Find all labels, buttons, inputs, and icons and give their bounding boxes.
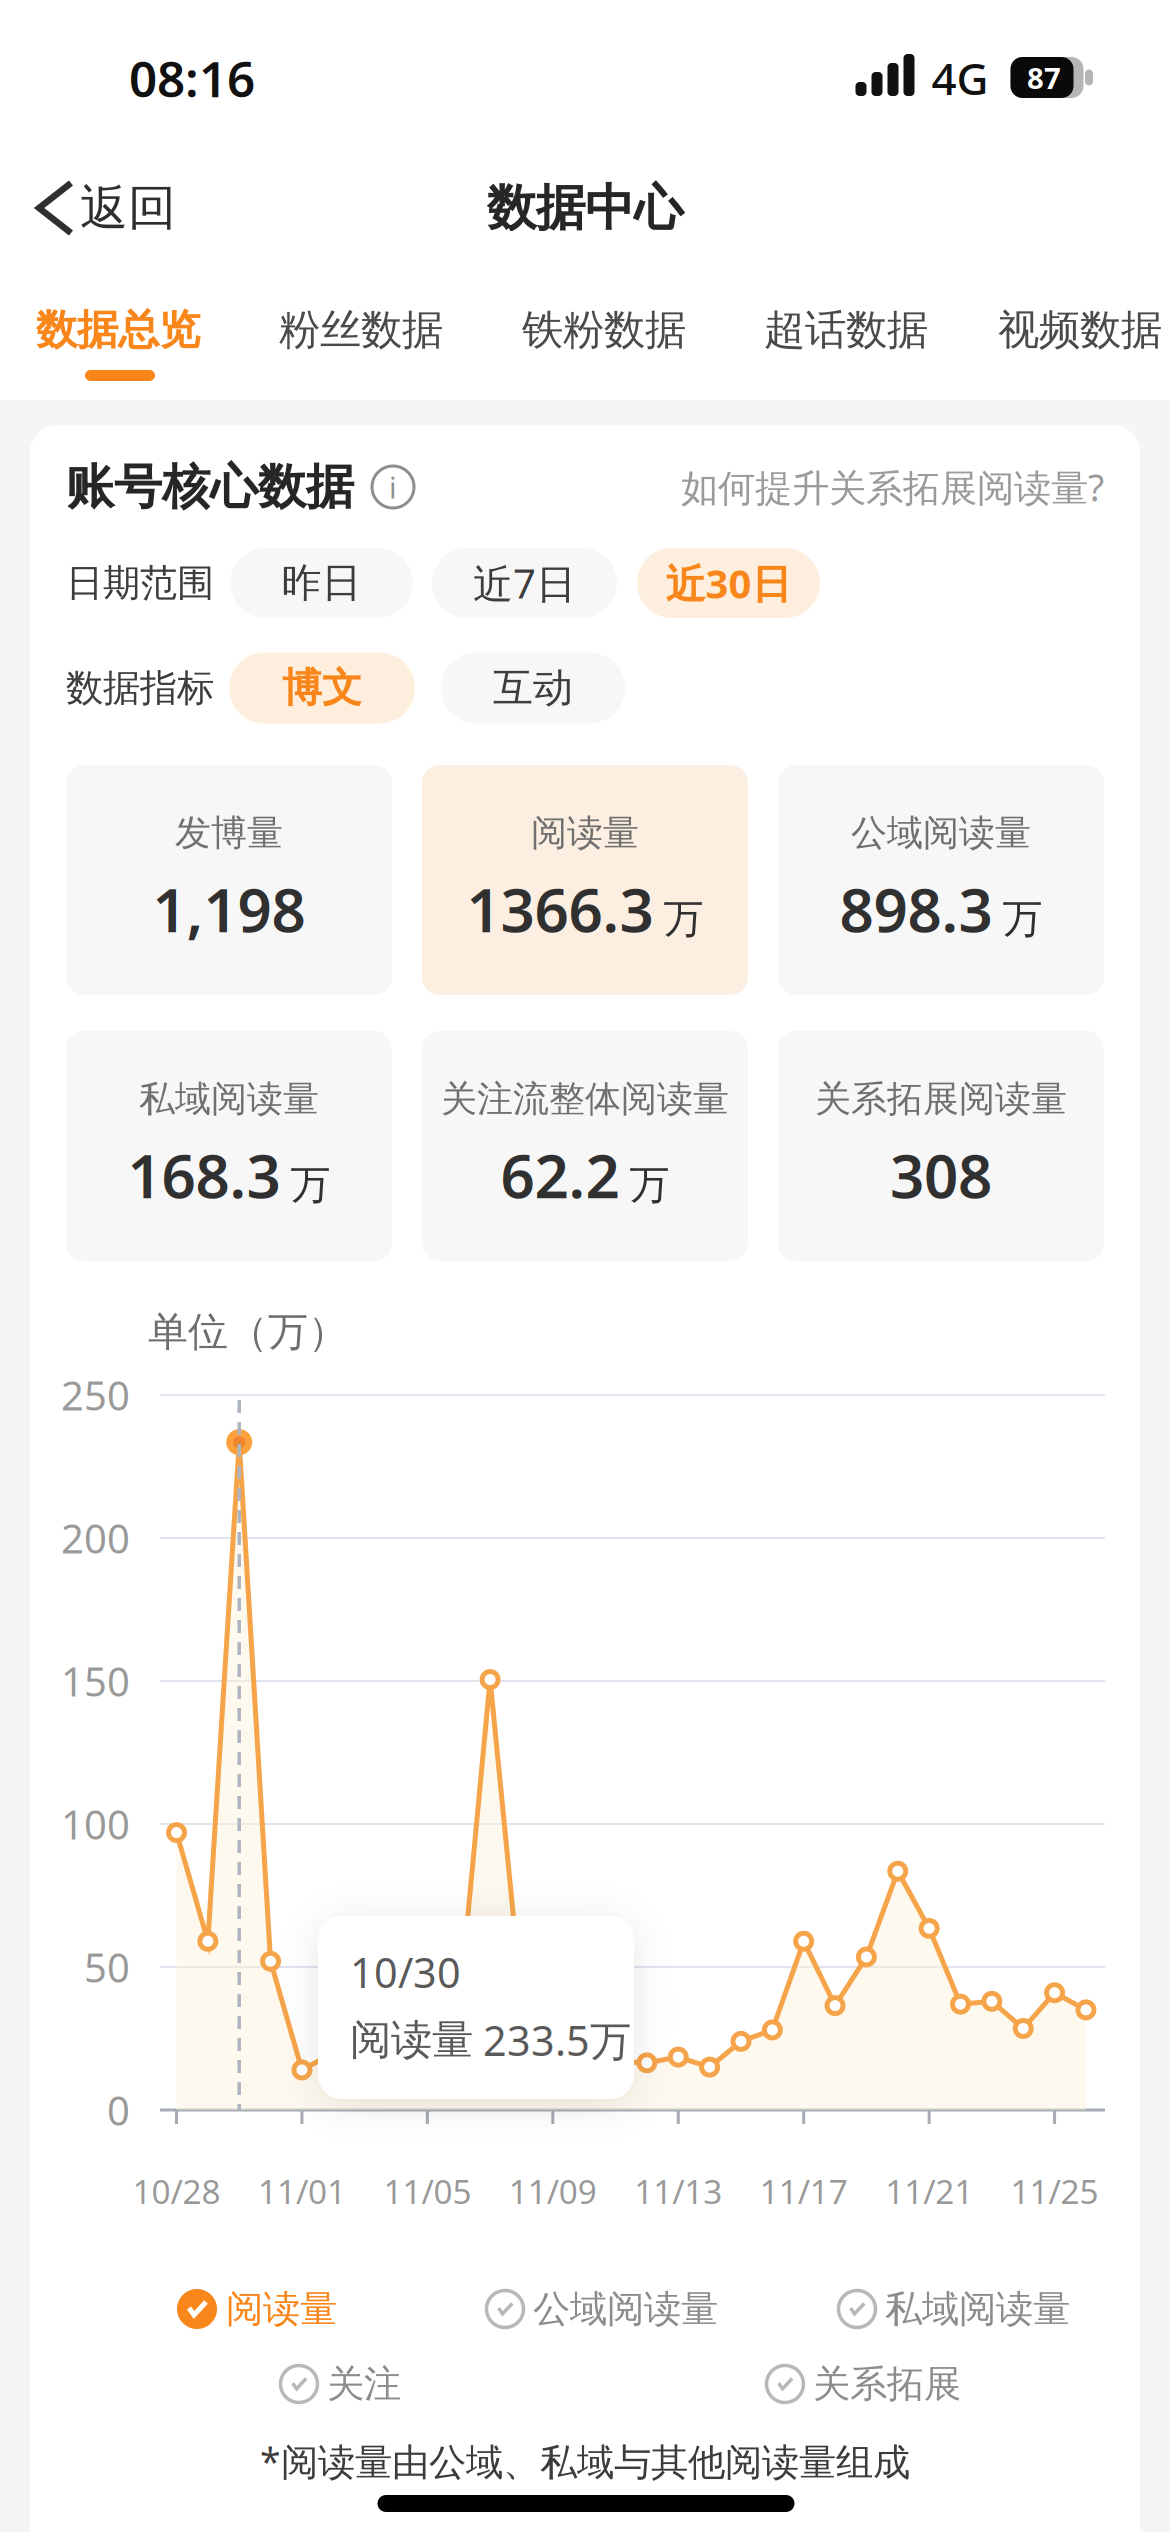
button[interactable]: 返回 <box>0 0 1170 2532</box>
staticText: 4G <box>931 49 988 107</box>
staticText: 发博量 <box>175 811 283 855</box>
staticText: 返回 <box>80 178 176 237</box>
staticText: 11/05 <box>383 2169 471 2213</box>
staticText: 日期范围 <box>66 560 214 606</box>
button[interactable]: 博文 <box>0 0 1170 2532</box>
staticText: 公域阅读量 <box>851 811 1031 855</box>
staticText: 11/21 <box>885 2169 973 2213</box>
staticText: 阅读量 <box>226 2286 337 2332</box>
staticText: 10/28 <box>132 2169 220 2213</box>
staticText: 近7日 <box>473 556 576 609</box>
staticText: 视频数据 <box>998 305 1162 355</box>
button[interactable]: 阅读量 <box>0 0 1170 2532</box>
button[interactable]: 发博量 <box>0 0 1170 2532</box>
staticText: 250 <box>61 1368 130 1421</box>
button[interactable]: 关系拓展 <box>0 0 1170 2532</box>
staticText: 233.5万 <box>483 2013 631 2067</box>
staticText: 账号核心数据 <box>66 457 354 516</box>
button[interactable]: 私域阅读量 <box>0 0 1170 2532</box>
staticText: 308 <box>890 1135 992 1215</box>
staticText: 11/01 <box>258 2169 346 2213</box>
staticText: 阅读量 <box>531 811 639 855</box>
button[interactable]: 昨日 <box>0 0 1170 2532</box>
staticText: 公域阅读量 <box>533 2286 718 2332</box>
staticText: 近30日 <box>665 556 791 609</box>
staticText: 万 <box>1002 894 1042 943</box>
staticText: 私域阅读量 <box>885 2286 1070 2332</box>
staticText: 50 <box>84 1940 130 1993</box>
button[interactable]: 阅读量 <box>0 0 1170 2532</box>
staticText: 数据中心 <box>487 178 683 238</box>
button[interactable]: 关注流整体阅读量 <box>0 0 1170 2532</box>
staticText: 万 <box>290 1160 330 1209</box>
staticText: 关注流整体阅读量 <box>441 1077 729 1121</box>
button[interactable]: 如何提升关系拓展阅读量? <box>0 0 1170 2532</box>
staticText: 昨日 <box>281 558 361 607</box>
staticText: 10/30 <box>350 1945 461 1999</box>
staticText: 万 <box>663 894 703 943</box>
staticText: 超话数据 <box>764 305 928 355</box>
staticText: 关系拓展 <box>813 2361 961 2407</box>
staticText: 数据指标 <box>66 665 214 711</box>
staticText: 粉丝数据 <box>279 305 443 355</box>
staticText: 互动 <box>493 663 573 712</box>
staticText: 数据总览 <box>36 305 200 355</box>
staticText: 898.3 <box>839 869 992 949</box>
button[interactable]: 互动 <box>0 0 1170 2532</box>
button[interactable]: 铁粉数据 <box>0 0 1170 2532</box>
staticText: 1,198 <box>152 869 305 949</box>
staticText: 关注 <box>327 2361 401 2407</box>
button[interactable]: 数据总览 <box>0 0 1170 2532</box>
staticText: 11/09 <box>509 2169 597 2213</box>
staticText: 08:16 <box>129 45 255 111</box>
staticText: 万 <box>629 1160 669 1209</box>
staticText: 168.3 <box>127 1135 280 1215</box>
staticText: 11/13 <box>634 2169 722 2213</box>
staticText: 11/25 <box>1011 2169 1099 2213</box>
staticText: 铁粉数据 <box>522 305 686 355</box>
button[interactable]: 近7日 <box>0 0 1170 2532</box>
button[interactable]: 私域阅读量 <box>0 0 1170 2532</box>
button[interactable]: 关系拓展阅读量 <box>0 0 1170 2532</box>
staticText: 1366.3 <box>466 869 653 949</box>
button[interactable]: 公域阅读量 <box>0 0 1170 2532</box>
staticText: 200 <box>61 1511 130 1564</box>
staticText: 62.2 <box>500 1135 619 1215</box>
staticText: 私域阅读量 <box>139 1077 319 1121</box>
staticText: 11/17 <box>760 2169 848 2213</box>
staticText: 如何提升关系拓展阅读量? <box>681 462 1104 512</box>
staticText: *阅读量由公域、私域与其他阅读量组成 <box>260 2436 910 2486</box>
button[interactable]: 近30日 <box>0 0 1170 2532</box>
button[interactable]: i <box>0 0 1170 2532</box>
staticText: 关系拓展阅读量 <box>815 1077 1067 1121</box>
staticText: 100 <box>61 1797 130 1850</box>
staticText: 博文 <box>282 663 362 712</box>
staticText: 阅读量 <box>350 2015 473 2065</box>
button[interactable]: 视频数据 <box>0 0 1170 2532</box>
button[interactable]: 公域阅读量 <box>0 0 1170 2532</box>
button[interactable]: 超话数据 <box>0 0 1170 2532</box>
staticText: 87 <box>1027 58 1061 97</box>
staticText: i <box>389 467 397 506</box>
staticText: 150 <box>61 1654 130 1707</box>
staticText: 0 <box>107 2083 130 2136</box>
button[interactable]: 关注 <box>0 0 1170 2532</box>
staticText: 单位（万） <box>148 1307 348 1356</box>
button[interactable]: 粉丝数据 <box>0 0 1170 2532</box>
